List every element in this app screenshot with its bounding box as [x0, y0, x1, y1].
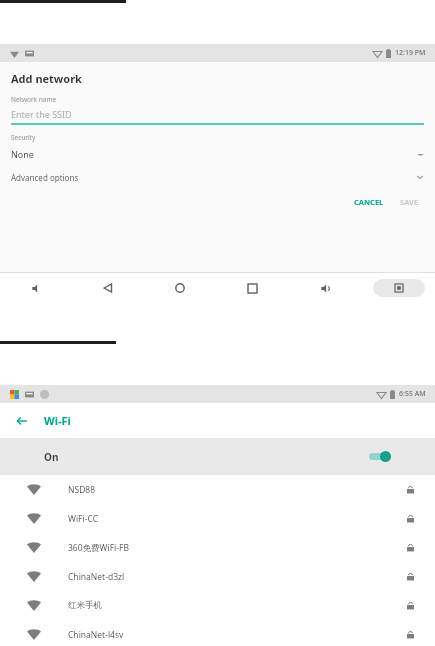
button[interactable]: Enter the SSID — [11, 108, 424, 125]
staticText: WiFi-CC — [68, 513, 99, 525]
staticText: NSD88 — [68, 484, 96, 496]
staticText: Network name — [11, 95, 57, 104]
staticText: None — [11, 148, 34, 160]
button[interactable]: Back — [72, 273, 144, 303]
staticText: 红米手机 — [68, 600, 102, 611]
staticText: 12:19 PM — [395, 48, 426, 58]
button[interactable]: Home — [144, 273, 216, 303]
staticText: Advanced options — [11, 172, 79, 183]
button[interactable]: 360免费WiFi-FB — [0, 533, 435, 562]
button[interactable]: WiFi-CC — [0, 504, 435, 533]
button[interactable]: ChinaNet-d3zl — [0, 562, 435, 591]
staticText: 6:55 AM — [399, 389, 426, 399]
staticText: Wi-Fi — [44, 413, 71, 428]
staticText: SAVE — [400, 197, 419, 207]
button[interactable]: Volume down — [0, 273, 72, 303]
staticText: On — [44, 450, 59, 464]
button[interactable]: Volume up — [289, 273, 362, 303]
button[interactable]: Screenshot — [373, 279, 425, 297]
staticText: ChinaNet-l4sv — [68, 629, 124, 641]
button[interactable]: Recents — [216, 273, 289, 303]
button[interactable]: NSD88 — [0, 475, 435, 504]
staticText: 360免费WiFi-FB — [68, 542, 129, 554]
button[interactable]: Back — [0, 403, 44, 438]
staticText: CANCEL — [354, 197, 384, 207]
button[interactable]: 红米手机 — [0, 591, 435, 620]
button[interactable]: On — [0, 438, 435, 475]
button[interactable]: None — [11, 146, 424, 162]
staticText: Add network — [11, 71, 82, 86]
button[interactable]: CANCEL — [349, 194, 389, 210]
staticText: Enter the SSID — [11, 108, 72, 120]
staticText: ChinaNet-d3zl — [68, 571, 125, 583]
button[interactable]: ChinaNet-l4sv — [0, 620, 435, 646]
staticText: Security — [11, 133, 36, 142]
button[interactable]: SAVE — [395, 194, 424, 210]
button[interactable]: Advanced options — [11, 169, 424, 185]
